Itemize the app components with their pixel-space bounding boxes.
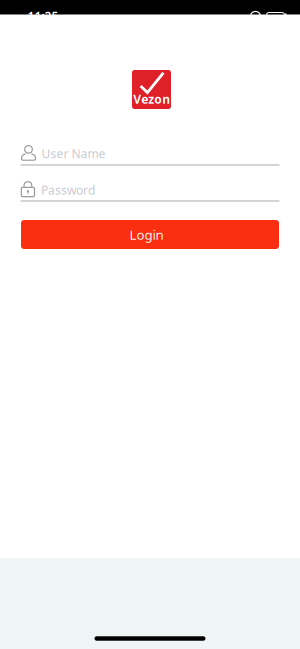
- staticText: 11:25: [27, 8, 58, 24]
- staticText: Vezon: [133, 91, 170, 107]
- staticText: Login: [129, 226, 163, 243]
- staticText: User Name: [41, 145, 105, 161]
- staticText: Password: [41, 182, 95, 198]
- button[interactable]: User Name: [20, 143, 279, 169]
- button[interactable]: Login: [21, 220, 279, 249]
- button[interactable]: Password: [20, 179, 279, 205]
